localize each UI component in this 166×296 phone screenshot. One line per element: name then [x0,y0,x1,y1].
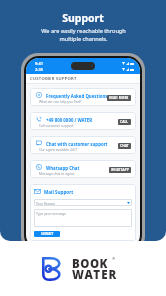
staticText: Support [62,11,104,25]
button[interactable]: Frequently Asked Questions [30,88,136,106]
staticText: We are easily reachable through multiple… [41,27,126,43]
staticText: WHATSAPP [111,168,129,172]
staticText: Type your message [36,211,66,215]
staticText: Chat with customer support [46,141,108,147]
staticText: ® [112,256,116,261]
button[interactable]: Whatsapp Chat [30,160,136,178]
button[interactable]: SUBMIT [34,231,60,237]
staticText: Mail Support [44,189,74,195]
button[interactable]: Type your message [34,209,132,227]
staticText: 2:35 [35,67,43,72]
staticText: SUBMIT [41,232,54,236]
button[interactable]: +49 800 0000 / WATER [30,112,136,130]
staticText: Our agent available 24/7 [39,147,78,151]
staticText: 9:41 [35,61,43,66]
staticText: READ MORE [109,96,129,100]
staticText: Message chat to agent [39,171,75,175]
staticText: Whatsapp Chat [46,165,80,171]
button[interactable]: CALL [118,119,131,125]
button[interactable]: READ MORE [107,95,131,101]
staticText: Frequently Asked Questions [46,93,108,99]
staticText: Call customer support [39,123,74,127]
staticText: CHAT [120,144,129,148]
staticText: CALL [120,120,129,124]
staticText: What we can help you find? [39,99,82,103]
staticText: CUSTOMER SUPPORT [30,76,77,82]
button[interactable]: Chat with customer support [30,136,136,154]
button[interactable]: WHATSAPP [109,167,131,173]
staticText: +49 800 0000 / WATER [46,117,93,123]
staticText: Your Reason [36,201,56,205]
staticText: WATER [72,267,118,283]
button[interactable]: CHAT [118,143,131,149]
staticText: BOOK [72,256,108,272]
button[interactable]: Your Reason [34,199,132,206]
